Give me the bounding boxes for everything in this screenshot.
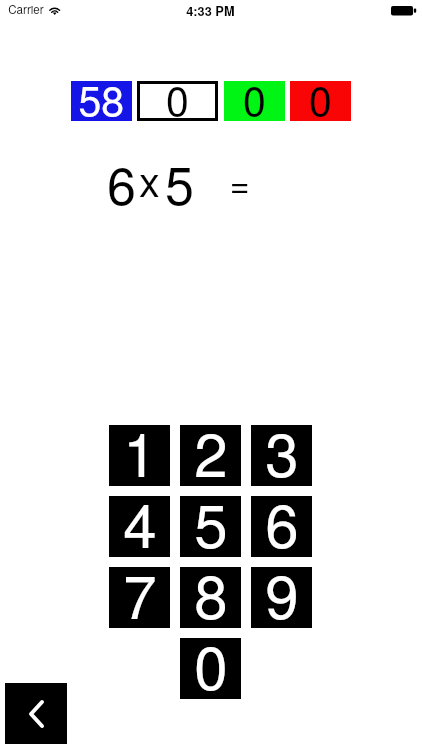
button[interactable]: 5 — [180, 496, 241, 557]
button[interactable]: 7 — [109, 567, 170, 628]
button[interactable]: 6 — [251, 496, 312, 557]
button[interactable]: 9 — [251, 567, 312, 628]
button[interactable]: 0 — [180, 638, 241, 699]
button[interactable]: 3 — [251, 425, 312, 486]
button[interactable]: Wrong answers — [290, 81, 351, 121]
button[interactable]: Time remaining — [71, 81, 132, 121]
button[interactable]: Correct answers — [224, 81, 285, 121]
button[interactable]: 1 — [109, 425, 170, 486]
button[interactable]: Your answer — [137, 81, 218, 121]
button[interactable]: 4 — [109, 496, 170, 557]
button[interactable]: 8 — [180, 567, 241, 628]
button[interactable]: 2 — [180, 425, 241, 486]
button[interactable]: Back — [5, 683, 67, 744]
